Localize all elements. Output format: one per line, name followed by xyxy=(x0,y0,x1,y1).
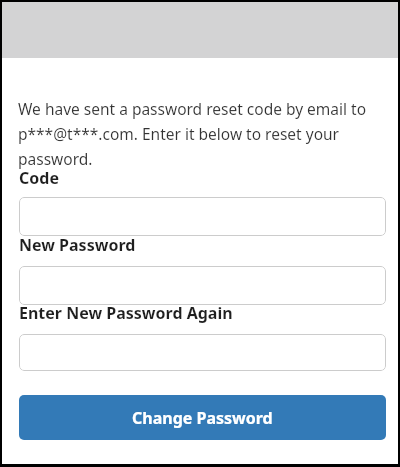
staticText: We have sent a password reset code by em… xyxy=(18,98,367,119)
staticText: p***@t***.com. Enter it below to reset y… xyxy=(18,123,339,144)
button[interactable] xyxy=(19,197,386,236)
staticText: password. xyxy=(18,148,93,169)
staticText: Code xyxy=(19,167,59,189)
button[interactable] xyxy=(19,266,386,305)
staticText: Enter New Password Again xyxy=(19,302,233,324)
staticText: New Password xyxy=(19,234,136,256)
button[interactable] xyxy=(19,334,386,371)
staticText: Change Password xyxy=(132,407,273,429)
button[interactable]: Change Password xyxy=(19,395,386,440)
